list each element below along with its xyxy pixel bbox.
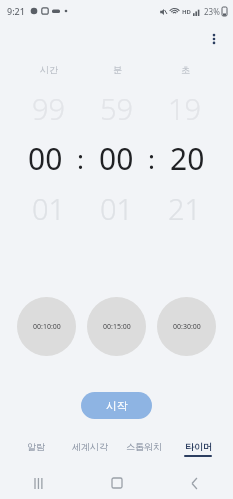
button[interactable]: 세계시각 xyxy=(63,441,117,467)
button[interactable]: 00 xyxy=(84,138,148,179)
staticText: 세계시각 xyxy=(72,441,108,452)
staticText: 시작 xyxy=(106,399,128,413)
staticText: 00:10:00 xyxy=(33,322,61,332)
staticText: 01 xyxy=(32,189,66,228)
staticText: 20 xyxy=(170,138,205,179)
staticText: 타이머 xyxy=(185,441,212,452)
staticText: 초 xyxy=(181,64,190,75)
staticText: 스톱워치 xyxy=(126,441,162,452)
staticText: 99 xyxy=(32,89,66,128)
button[interactable]: Home xyxy=(102,468,132,498)
staticText: 00:15:00 xyxy=(103,322,131,332)
staticText: 9:21 xyxy=(7,5,25,17)
staticText: 01 xyxy=(100,189,134,228)
staticText: 00 xyxy=(99,138,134,179)
staticText: 19 xyxy=(168,89,202,128)
staticText: 00:30:00 xyxy=(173,322,201,332)
staticText: 00 xyxy=(28,138,63,179)
button[interactable]: Recents xyxy=(24,468,54,498)
staticText: : xyxy=(77,141,84,176)
staticText: 알람 xyxy=(27,441,45,452)
staticText: : xyxy=(148,141,155,176)
staticText: 23% xyxy=(204,6,220,17)
button[interactable]: 00:30:00 xyxy=(157,297,216,356)
button[interactable]: 알람 xyxy=(8,441,63,467)
button[interactable]: 20 xyxy=(155,138,219,179)
button[interactable]: 00 xyxy=(14,138,77,179)
button[interactable]: 시작 xyxy=(81,392,152,419)
button[interactable]: 스톱워치 xyxy=(117,441,171,467)
button[interactable]: Back xyxy=(179,468,209,498)
staticText: 시간 xyxy=(40,64,58,75)
button[interactable]: More options xyxy=(201,26,227,52)
staticText: 분 xyxy=(113,64,122,75)
staticText: 21 xyxy=(168,189,202,228)
staticText: 59 xyxy=(100,89,134,128)
button[interactable]: 00:10:00 xyxy=(17,297,76,356)
button[interactable]: 타이머 xyxy=(171,441,225,467)
staticText: HD xyxy=(182,8,191,16)
button[interactable]: 00:15:00 xyxy=(87,297,146,356)
